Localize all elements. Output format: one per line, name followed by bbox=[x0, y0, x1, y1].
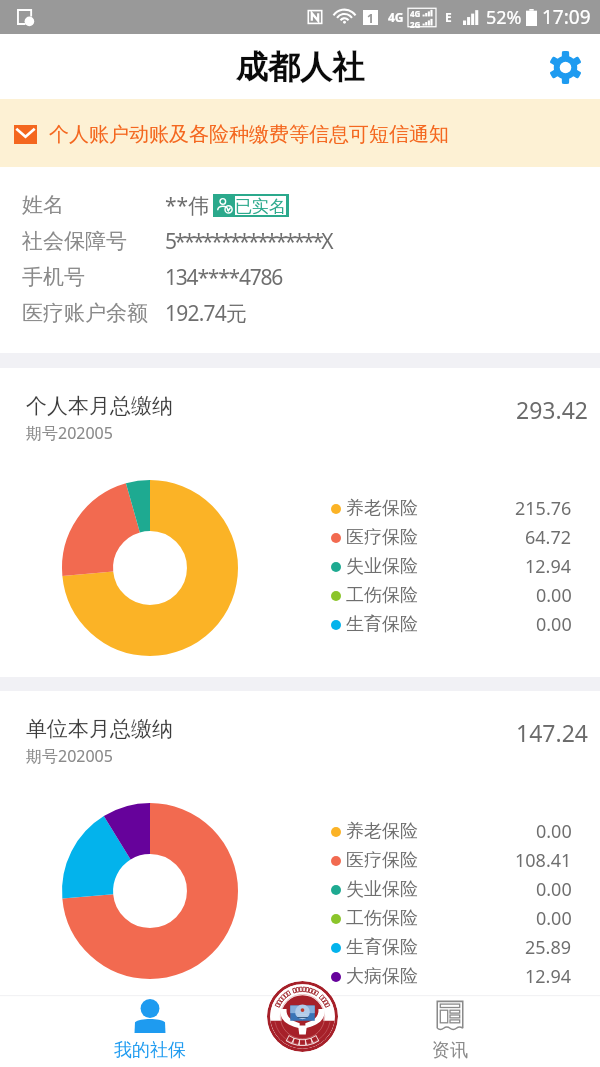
staticText: 2G bbox=[410, 19, 421, 28]
button[interactable]: 社保卡 bbox=[267, 981, 338, 1052]
staticText: 生育保险 bbox=[346, 613, 418, 636]
staticText: 293.42 bbox=[516, 394, 588, 425]
staticText: 失业保险 bbox=[346, 555, 418, 578]
staticText: 资讯 bbox=[432, 1039, 468, 1062]
staticText: 192.74元 bbox=[165, 299, 247, 328]
staticText: E bbox=[445, 9, 452, 25]
staticText: 108.41 bbox=[515, 848, 572, 873]
staticText: 0.00 bbox=[536, 877, 572, 902]
staticText: 工伤保险 bbox=[346, 584, 418, 607]
staticText: 期号202005 bbox=[26, 422, 113, 444]
staticText: 4G bbox=[410, 8, 421, 19]
staticText: 17:09 bbox=[542, 4, 591, 30]
staticText: 生育保险 bbox=[346, 936, 418, 959]
staticText: 12.94 bbox=[525, 554, 572, 579]
staticText: 0.00 bbox=[536, 583, 572, 608]
staticText: 期号202005 bbox=[26, 745, 113, 767]
staticText: 134****4786 bbox=[165, 263, 283, 292]
staticText: 4G bbox=[388, 9, 404, 25]
staticText: 手机号 bbox=[22, 264, 85, 290]
button[interactable]: Settings bbox=[543, 45, 587, 89]
staticText: 医疗账户余额 bbox=[22, 300, 148, 326]
staticText: 医疗保险 bbox=[346, 849, 418, 872]
staticText: 147.24 bbox=[516, 717, 588, 748]
staticText: 个人账户动账及各险种缴费等信息可短信通知 bbox=[49, 122, 449, 147]
staticText: 失业保险 bbox=[346, 878, 418, 901]
button[interactable]: 个人账户动账及各险种缴费等信息可短信通知 bbox=[0, 99, 600, 167]
staticText: 215.76 bbox=[515, 496, 572, 521]
staticText: 25.89 bbox=[525, 935, 572, 960]
button[interactable]: 我的社保 bbox=[100, 995, 200, 1067]
staticText: **伟 bbox=[165, 191, 210, 220]
staticText: 0.00 bbox=[536, 612, 572, 637]
button[interactable]: 资讯 bbox=[400, 995, 500, 1067]
staticText: 0.00 bbox=[536, 906, 572, 931]
staticText: 12.94 bbox=[525, 964, 572, 989]
staticText: 单位本月总缴纳 bbox=[26, 716, 173, 742]
staticText: 64.72 bbox=[525, 525, 572, 550]
staticText: 5****************X bbox=[165, 227, 332, 256]
staticText: 姓名 bbox=[22, 192, 64, 218]
staticText: 社会保障号 bbox=[22, 228, 127, 254]
staticText: 1 bbox=[367, 10, 374, 25]
staticText: 我的社保 bbox=[114, 1039, 186, 1062]
staticText: 医疗保险 bbox=[346, 526, 418, 549]
staticText: 大病保险 bbox=[346, 965, 418, 988]
staticText: 养老保险 bbox=[346, 497, 418, 520]
staticText: 个人本月总缴纳 bbox=[26, 393, 173, 419]
staticText: 已实名 bbox=[235, 196, 286, 215]
staticText: 工伤保险 bbox=[346, 907, 418, 930]
staticText: 养老保险 bbox=[346, 820, 418, 843]
staticText: 0.00 bbox=[536, 819, 572, 844]
staticText: 成都人社 bbox=[236, 47, 364, 87]
staticText: 52% bbox=[486, 5, 522, 30]
